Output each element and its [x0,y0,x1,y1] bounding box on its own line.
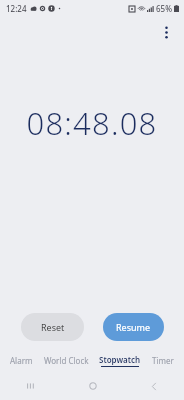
button[interactable]: Recent apps [0,375,62,397]
button[interactable]: Reset [21,313,84,341]
staticText: 65% [156,3,172,14]
staticText: Resume [116,321,151,333]
staticText: Alarm [10,355,33,366]
staticText: 12:24 [6,3,27,14]
button[interactable]: World Clock [44,355,89,366]
staticText: Reset [41,321,65,333]
staticText: 08:48.08 [0,102,184,144]
button[interactable]: Home [62,375,123,397]
button[interactable]: Resume [103,313,164,341]
staticText: Timer [152,355,174,366]
button[interactable]: Timer [152,355,174,366]
button[interactable]: Alarm [10,355,33,366]
staticText: World Clock [44,355,89,366]
button[interactable]: Stopwatch [99,354,141,367]
staticText: Stopwatch [99,354,141,365]
button[interactable]: More options [153,19,179,45]
